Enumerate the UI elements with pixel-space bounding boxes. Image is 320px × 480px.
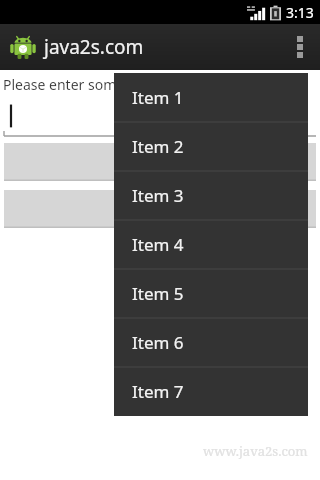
staticText: Item 3 — [132, 184, 184, 207]
button[interactable]: Item 2 — [114, 122, 308, 171]
button[interactable]: Item 3 — [114, 171, 308, 220]
button[interactable]: Item 6 — [114, 318, 308, 367]
staticText: Item 4 — [132, 233, 184, 256]
button[interactable]: Item 5 — [114, 269, 308, 318]
staticText: Item 2 — [132, 135, 184, 158]
button[interactable]: Item 4 — [114, 220, 308, 269]
button[interactable]: Item 7 — [114, 367, 308, 416]
button[interactable] — [4, 143, 316, 181]
button[interactable]: More options — [280, 24, 320, 70]
staticText: Item 1 — [132, 86, 184, 109]
button[interactable] — [0, 100, 320, 138]
staticText: java2s.com — [44, 34, 144, 60]
staticText: Item 5 — [132, 282, 184, 305]
staticText: www.java2s.com — [203, 442, 308, 460]
button[interactable] — [4, 190, 316, 228]
staticText: Item 7 — [132, 380, 184, 403]
staticText: 3:13 — [286, 3, 314, 22]
button[interactable]: Item 1 — [114, 73, 308, 122]
staticText: Please enter some text — [3, 75, 153, 94]
staticText: Item 6 — [132, 331, 184, 354]
